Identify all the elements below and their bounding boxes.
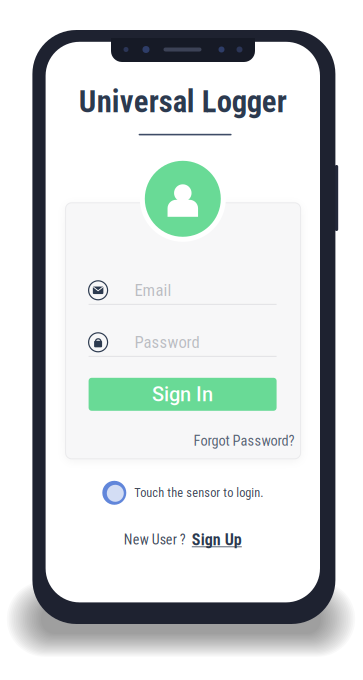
staticText: Touch the sensor to login. bbox=[134, 485, 263, 500]
button[interactable]: New User ? bbox=[46, 529, 320, 551]
button[interactable]: Sign In bbox=[89, 378, 277, 411]
staticText: Password bbox=[135, 332, 200, 352]
button[interactable]: Forgot Password? bbox=[89, 432, 295, 450]
staticText: Sign Up bbox=[192, 530, 242, 549]
staticText: New User ? bbox=[124, 532, 186, 548]
button[interactable]: Touch the sensor to login bbox=[46, 480, 320, 506]
staticText: Email bbox=[135, 280, 172, 300]
staticText: Forgot Password? bbox=[194, 432, 295, 449]
staticText: Universal Logger bbox=[79, 84, 287, 120]
staticText: Sign In bbox=[152, 383, 213, 406]
